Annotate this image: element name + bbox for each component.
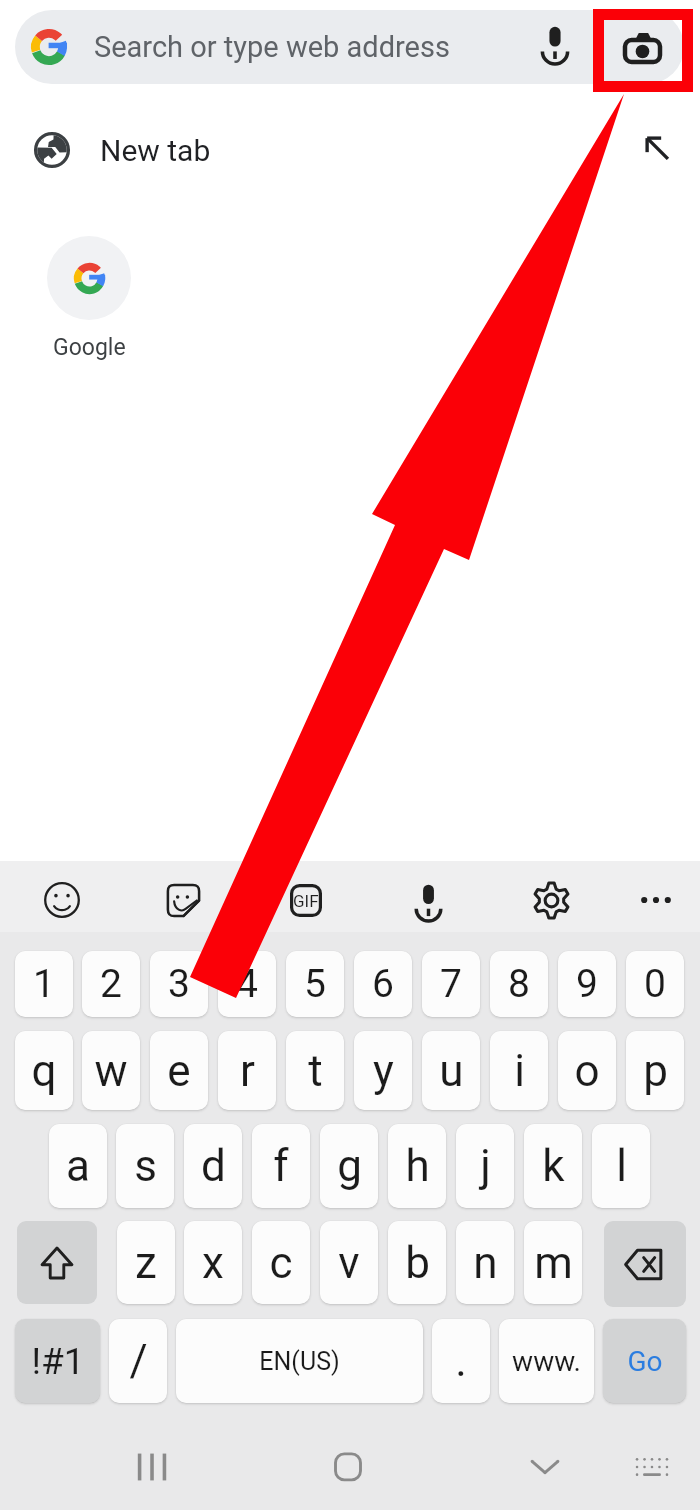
button[interactable]: www. — [499, 1319, 594, 1403]
button[interactable]: Change keyboard — [622, 1437, 682, 1497]
staticText: 3 — [168, 961, 190, 1007]
staticText: p — [643, 1045, 668, 1097]
staticText: Search or type web address — [94, 30, 450, 64]
button[interactable]: o — [558, 1031, 616, 1110]
button[interactable]: z — [117, 1221, 175, 1304]
staticText: 8 — [508, 961, 530, 1007]
staticText: GIF — [293, 891, 319, 911]
staticText: 1 — [33, 961, 55, 1007]
button[interactable]: e — [150, 1031, 208, 1110]
button[interactable]: c — [252, 1221, 310, 1304]
staticText: !#1 — [31, 1340, 85, 1383]
button[interactable]: b — [388, 1221, 446, 1304]
button[interactable]: n — [456, 1221, 514, 1304]
button[interactable]: a — [49, 1124, 107, 1208]
staticText: w — [94, 1045, 128, 1097]
button[interactable]: Search with your camera — [614, 22, 670, 78]
staticText: c — [269, 1237, 293, 1289]
button[interactable]: x — [184, 1221, 242, 1304]
button[interactable]: 6 — [354, 951, 412, 1017]
button[interactable]: Recent apps — [122, 1437, 182, 1497]
button[interactable]: Backspace — [604, 1221, 686, 1307]
button[interactable]: !#1 — [15, 1319, 100, 1403]
button[interactable]: l — [592, 1124, 650, 1208]
staticText: / — [129, 1335, 148, 1387]
staticText: j — [480, 1140, 491, 1192]
staticText: a — [66, 1140, 90, 1192]
button[interactable]: / — [109, 1319, 167, 1403]
button[interactable]: q — [15, 1031, 73, 1110]
staticText: 0 — [644, 961, 666, 1007]
button[interactable]: d — [184, 1124, 242, 1208]
button[interactable]: f — [252, 1124, 310, 1208]
button[interactable]: t — [286, 1031, 344, 1110]
button[interactable]: 8 — [490, 951, 548, 1017]
button[interactable]: j — [456, 1124, 514, 1208]
button[interactable]: Go — [603, 1319, 686, 1403]
button[interactable]: m — [524, 1221, 582, 1304]
staticText: EN(US) — [259, 1347, 340, 1376]
button[interactable]: Google — [47, 236, 131, 361]
button[interactable]: 7 — [422, 951, 480, 1017]
button[interactable]: r — [218, 1031, 276, 1110]
button[interactable]: s — [116, 1124, 174, 1208]
staticText: g — [337, 1140, 362, 1192]
button[interactable]: 3 — [150, 951, 208, 1017]
button[interactable]: Voice input — [396, 868, 460, 932]
staticText: o — [574, 1045, 600, 1097]
button[interactable]: Edit search — [633, 124, 681, 172]
button[interactable]: Voice search — [527, 15, 583, 71]
staticText: 5 — [304, 961, 326, 1007]
staticText: New tab — [100, 133, 211, 168]
staticText: t — [308, 1045, 323, 1097]
staticText: 4 — [236, 961, 258, 1007]
button[interactable]: 1 — [15, 951, 73, 1017]
button[interactable]: 4 — [218, 951, 276, 1017]
staticText: k — [542, 1140, 565, 1192]
button[interactable]: u — [422, 1031, 480, 1110]
button[interactable]: GIF — [274, 868, 338, 932]
button[interactable]: i — [490, 1031, 548, 1110]
button[interactable]: 2 — [82, 951, 140, 1017]
button[interactable]: EN(US) — [176, 1319, 423, 1403]
staticText: . — [455, 1335, 467, 1387]
button[interactable]: . — [432, 1319, 490, 1403]
staticText: f — [273, 1140, 289, 1192]
staticText: d — [201, 1140, 226, 1192]
button[interactable]: w — [82, 1031, 140, 1110]
button[interactable]: Shift — [17, 1221, 97, 1304]
button[interactable]: Settings — [519, 868, 583, 932]
staticText: l — [616, 1140, 627, 1192]
staticText: m — [534, 1237, 573, 1289]
staticText: v — [338, 1237, 360, 1289]
button[interactable]: p — [626, 1031, 684, 1110]
staticText: Go — [627, 1345, 663, 1378]
button[interactable]: y — [354, 1031, 412, 1110]
staticText: r — [240, 1045, 255, 1097]
staticText: 6 — [372, 961, 394, 1007]
staticText: n — [473, 1237, 498, 1289]
button[interactable]: Emoji — [30, 868, 94, 932]
staticText: s — [134, 1140, 157, 1192]
button[interactable]: v — [320, 1221, 378, 1304]
staticText: q — [31, 1045, 57, 1097]
button[interactable]: New tab — [0, 112, 700, 188]
button[interactable]: 0 — [626, 951, 684, 1017]
staticText: z — [135, 1237, 157, 1289]
staticText: 7 — [440, 961, 462, 1007]
button[interactable]: 5 — [286, 951, 344, 1017]
button[interactable]: Hide keyboard — [515, 1437, 575, 1497]
staticText: i — [514, 1045, 525, 1097]
button[interactable]: Stickers — [151, 868, 215, 932]
staticText: x — [202, 1237, 224, 1289]
button[interactable]: More options — [624, 868, 688, 932]
button[interactable]: h — [388, 1124, 446, 1208]
button[interactable]: 9 — [558, 951, 616, 1017]
button[interactable]: Search or type web address — [15, 10, 684, 84]
staticText: h — [405, 1140, 430, 1192]
button[interactable]: k — [524, 1124, 582, 1208]
button[interactable]: Home — [318, 1437, 378, 1497]
staticText: e — [167, 1045, 191, 1097]
button[interactable]: g — [320, 1124, 378, 1208]
staticText: Google — [53, 334, 126, 361]
